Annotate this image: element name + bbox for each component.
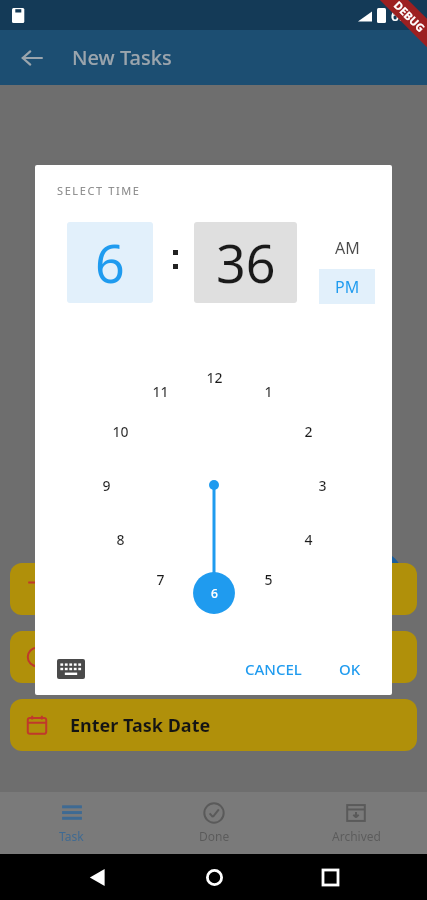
button[interactable]: 5	[254, 565, 282, 593]
staticText: 6	[211, 585, 218, 601]
button[interactable]: 36	[194, 222, 297, 303]
staticText: 9	[102, 476, 111, 495]
button[interactable]: 6	[200, 579, 228, 607]
button[interactable]: 10	[106, 417, 134, 445]
button[interactable]: 7	[146, 565, 174, 593]
staticText: 10	[112, 422, 129, 441]
staticText: CANCEL	[245, 659, 302, 679]
button[interactable]: 9	[92, 471, 120, 499]
staticText: 6:36	[391, 6, 419, 25]
button[interactable]: Enter Task Time	[10, 631, 417, 683]
button[interactable]: OK	[325, 651, 375, 687]
staticText: New Tasks	[72, 44, 172, 71]
staticText: 2	[304, 422, 313, 441]
staticText: Done	[199, 828, 230, 844]
button[interactable]: Done	[143, 792, 285, 854]
staticText: 7	[156, 570, 165, 589]
staticText: 6	[95, 227, 125, 298]
staticText: 3	[318, 476, 327, 495]
button[interactable]: Back	[8, 34, 56, 82]
button[interactable]: Back	[77, 857, 117, 897]
staticText: Task	[59, 828, 84, 844]
staticText: OK	[339, 659, 361, 679]
button[interactable]: 4	[294, 525, 322, 553]
staticText: Archived	[332, 828, 381, 844]
staticText: 5	[264, 570, 273, 589]
button[interactable]: AM	[319, 233, 375, 263]
staticText: 8	[116, 530, 125, 549]
button[interactable]: CANCEL	[235, 651, 312, 687]
button[interactable]: Add task	[356, 552, 402, 598]
button[interactable]: 11	[146, 377, 174, 405]
staticText: Enter Task Title	[70, 577, 208, 602]
staticText: 36	[216, 227, 276, 298]
button[interactable]: 3	[308, 471, 336, 499]
staticText: 11	[152, 382, 169, 401]
button[interactable]: Recents	[310, 857, 350, 897]
staticText: 12	[206, 368, 223, 387]
staticText: PM	[335, 276, 360, 298]
button[interactable]: Enter Task Date	[10, 699, 417, 751]
staticText: DEBUG	[391, 0, 427, 35]
button[interactable]: 2	[294, 417, 322, 445]
button[interactable]: 1	[254, 377, 282, 405]
staticText: Enter Task Time	[70, 645, 212, 670]
button[interactable]: Archived	[285, 792, 427, 854]
staticText: Enter Task Date	[70, 713, 211, 738]
button[interactable]: 6	[67, 222, 153, 303]
button[interactable]: Home	[194, 857, 234, 897]
staticText: SELECT TIME	[57, 183, 141, 198]
button[interactable]: 12	[200, 363, 228, 391]
staticText: AM	[335, 237, 360, 259]
button[interactable]: 8	[106, 525, 134, 553]
staticText: 1	[264, 382, 273, 401]
staticText: 4	[304, 530, 313, 549]
button[interactable]: Task	[0, 792, 143, 854]
button[interactable]: Enter Task Title	[10, 563, 417, 615]
button[interactable]: PM	[319, 269, 375, 304]
button[interactable]: Switch to text input	[57, 659, 85, 679]
